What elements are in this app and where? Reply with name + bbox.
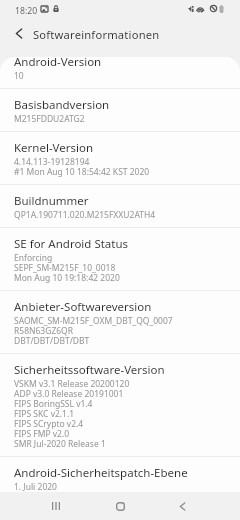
button[interactable]: Android-Sicherheitspatch-Ebene [0, 457, 240, 492]
staticText: Anbieter-Softwareversion [14, 299, 152, 314]
staticText: Android-Sicherheitspatch-Ebene [14, 465, 188, 480]
button[interactable]: Buildnummer [0, 185, 240, 227]
staticText: 1. Juli 2020 [14, 481, 57, 492]
staticText: VSKM v3.1 Release 20200120 ADP v3.0 Rele… [14, 378, 130, 449]
staticText: Buildnummer [14, 193, 89, 208]
button[interactable]: Kernel-Version [0, 132, 240, 184]
staticText: Sicherheitssoftware-Version [14, 362, 165, 377]
button[interactable]: Home [97, 492, 143, 520]
staticText: SAOMC_SM-M215F_OXM_DBT_QQ_0007 R58N63GZ6… [14, 315, 173, 346]
button[interactable]: Back [10, 20, 28, 46]
button[interactable]: Sicherheitssoftware-Version [0, 354, 240, 456]
button[interactable]: SE for Android Status [0, 228, 240, 290]
button[interactable]: Android-Version [0, 57, 240, 88]
staticText: 10 [14, 70, 24, 82]
button[interactable]: Anbieter-Softwareversion [0, 291, 240, 353]
staticText: Android-Version [14, 57, 102, 69]
staticText: SE for Android Status [14, 236, 129, 251]
staticText: Kernel-Version [14, 140, 94, 155]
staticText: QP1A.190711.020.M215FXXU2ATH4 [14, 209, 156, 221]
staticText: 18:20 [15, 5, 38, 17]
button[interactable]: Recent apps [33, 492, 79, 520]
staticText: Basisbandversion [14, 97, 110, 112]
staticText: M215FDDU2ATG2 [14, 113, 85, 125]
button[interactable]: Basisbandversion [0, 89, 240, 131]
staticText: Softwareinformationen [33, 27, 160, 42]
button[interactable]: Back [159, 492, 205, 520]
staticText: 4.14.113-19128194 #1 Mon Aug 10 18:54:42… [14, 156, 150, 177]
staticText: Enforcing SEPF_SM-M215F_10_0018 Mon Aug … [14, 252, 120, 283]
